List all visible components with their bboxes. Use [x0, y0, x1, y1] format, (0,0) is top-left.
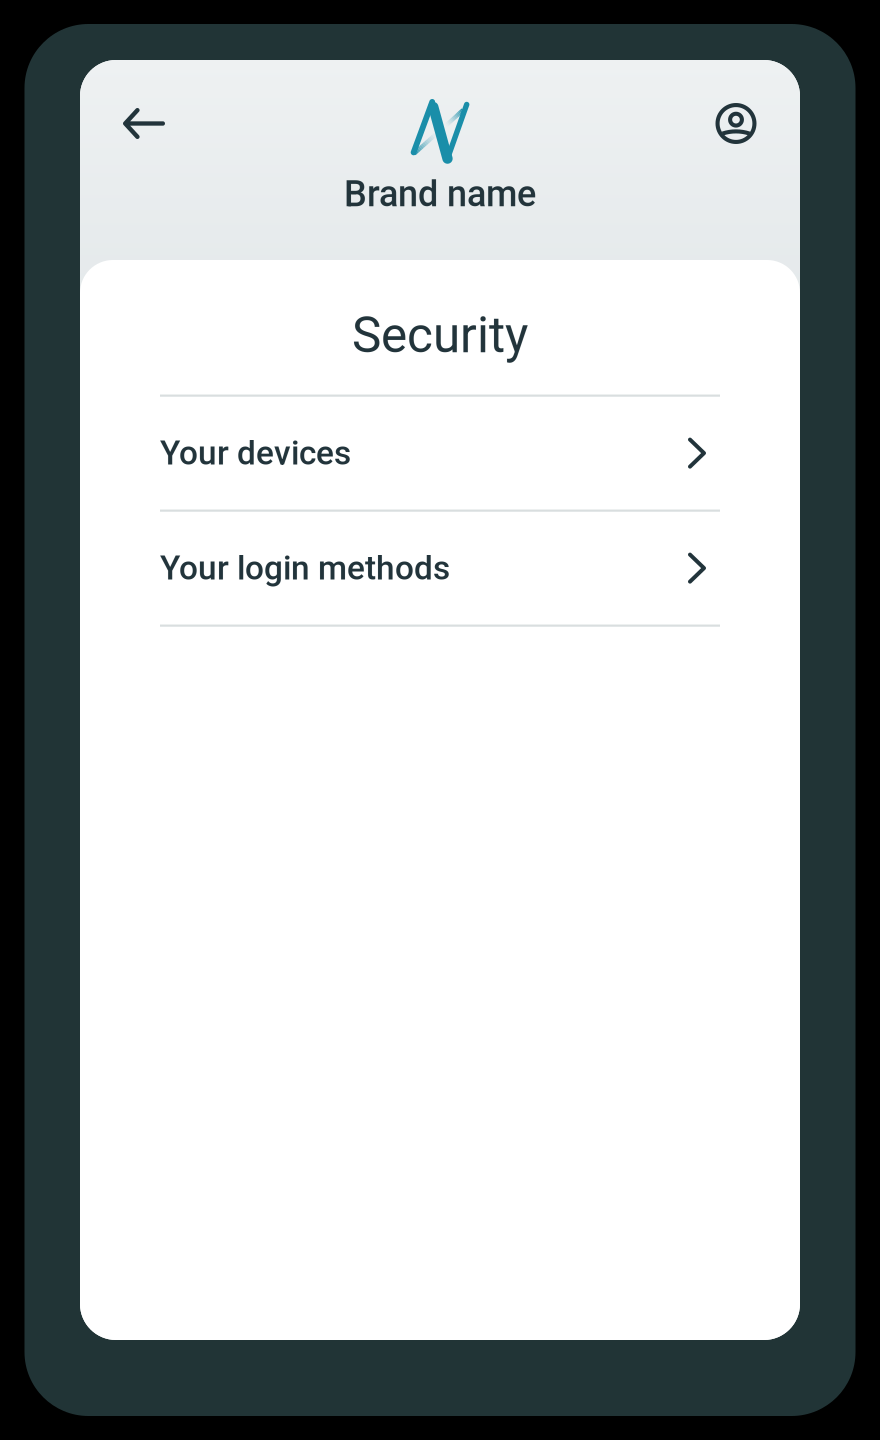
staticText: Security: [352, 306, 528, 364]
staticText: Your devices: [160, 434, 351, 473]
staticText: Brand name: [344, 173, 536, 215]
button[interactable]: Your login methods: [160, 512, 720, 624]
button[interactable]: Back: [108, 87, 180, 159]
staticText: Your login methods: [160, 549, 450, 588]
button[interactable]: Account: [700, 87, 772, 159]
button[interactable]: Your devices: [160, 397, 720, 509]
